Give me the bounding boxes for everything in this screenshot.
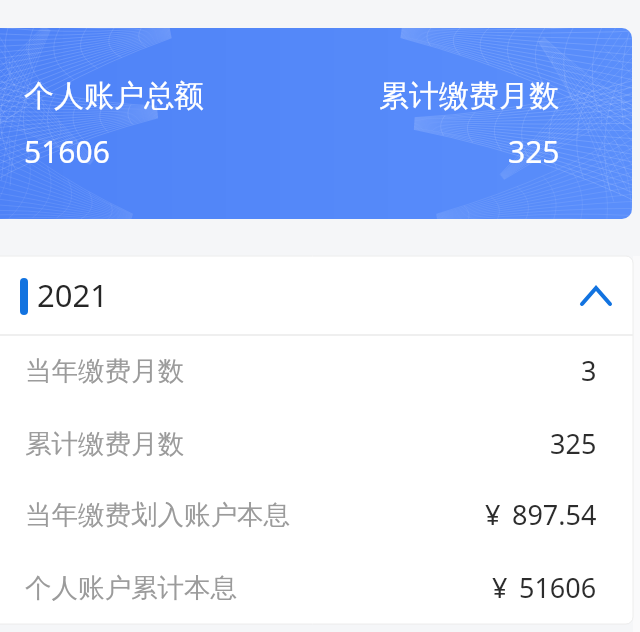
button[interactable]: 个人账户累计本息	[0, 552, 640, 624]
staticText: 当年缴费划入账户本息	[25, 498, 290, 531]
button[interactable]: 2021	[0, 256, 640, 334]
button[interactable]: 当年缴费划入账户本息	[0, 479, 640, 551]
staticText: 个人账户总额	[24, 77, 204, 115]
staticText: 累计缴费月数	[379, 77, 559, 115]
staticText: 3	[581, 352, 597, 389]
button[interactable]: 累计缴费月数	[0, 408, 640, 480]
other: Collapse 2021	[580, 286, 612, 306]
staticText: ¥ 51606	[492, 569, 597, 606]
staticText: 2021	[37, 274, 108, 316]
staticText: ¥ 897.54	[485, 496, 597, 533]
staticText: 325	[508, 131, 560, 172]
staticText: 累计缴费月数	[25, 427, 184, 460]
staticText: 个人账户累计本息	[25, 571, 237, 604]
staticText: 51606	[24, 131, 110, 172]
staticText: 当年缴费月数	[25, 354, 184, 387]
button[interactable]: 当年缴费月数	[0, 335, 640, 407]
staticText: 325	[550, 425, 597, 462]
